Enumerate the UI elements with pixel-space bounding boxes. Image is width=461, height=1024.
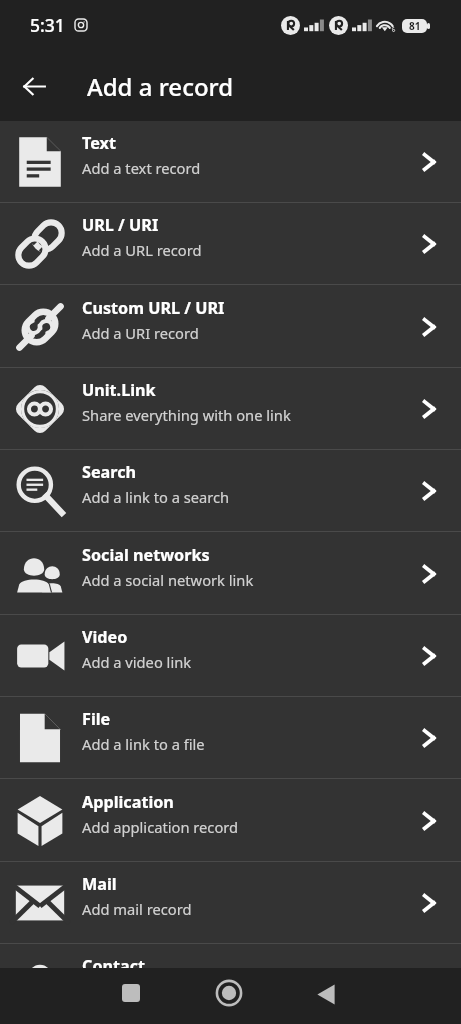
staticText: Add a contact record bbox=[82, 981, 225, 1001]
staticText: Add application record bbox=[82, 817, 239, 837]
button[interactable]: URL / URI bbox=[0, 203, 461, 285]
staticText: Unit.Link bbox=[82, 379, 156, 401]
button[interactable]: File bbox=[0, 697, 461, 779]
staticText: Contact bbox=[82, 955, 146, 977]
staticText: Text bbox=[82, 132, 116, 154]
staticText: Add a video link bbox=[82, 652, 192, 672]
staticText: Add a social network link bbox=[82, 570, 254, 590]
button[interactable]: Back bbox=[10, 62, 58, 110]
button[interactable]: Application bbox=[0, 780, 461, 862]
staticText: Add mail record bbox=[82, 899, 192, 919]
button[interactable]: Search bbox=[0, 450, 461, 532]
button[interactable]: Text bbox=[0, 121, 461, 203]
staticText: Search bbox=[82, 461, 137, 483]
button[interactable]: Social networks bbox=[0, 533, 461, 615]
button[interactable]: Home bbox=[205, 969, 253, 1017]
staticText: Video bbox=[82, 626, 128, 648]
button[interactable]: Unit.Link bbox=[0, 368, 461, 450]
staticText: Share everything with one link bbox=[82, 405, 291, 425]
button[interactable]: Contact bbox=[0, 944, 461, 1024]
staticText: 81 bbox=[409, 19, 421, 33]
staticText: Add a link to a search bbox=[82, 487, 230, 507]
staticText: 5:31 bbox=[30, 13, 65, 37]
button[interactable]: Custom URL / URI bbox=[0, 286, 461, 368]
staticText: Add a URI record bbox=[82, 323, 199, 343]
staticText: Add a text record bbox=[82, 158, 201, 178]
staticText: Application bbox=[82, 791, 174, 813]
button[interactable]: Mail bbox=[0, 862, 461, 944]
button[interactable]: Video bbox=[0, 615, 461, 697]
button[interactable]: Recents bbox=[107, 969, 155, 1017]
staticText: Custom URL / URI bbox=[82, 297, 225, 319]
staticText: Add a URL record bbox=[82, 240, 202, 260]
staticText: Social networks bbox=[82, 544, 210, 566]
staticText: URL / URI bbox=[82, 214, 159, 236]
staticText: Mail bbox=[82, 873, 117, 895]
staticText: File bbox=[82, 708, 111, 730]
staticText: Add a record bbox=[87, 70, 234, 103]
staticText: Add a link to a file bbox=[82, 734, 205, 754]
button[interactable]: Back bbox=[302, 970, 350, 1018]
